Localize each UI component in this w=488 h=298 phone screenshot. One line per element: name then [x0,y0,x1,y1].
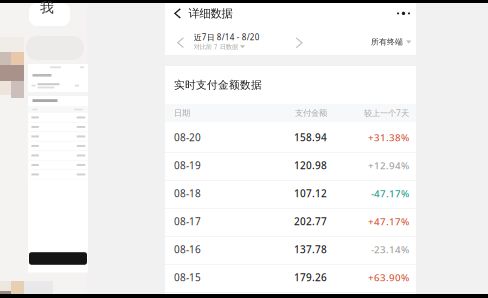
button[interactable]: Back [167,4,189,23]
staticText: 08-17 [174,215,201,228]
staticText: -47.17% [371,187,409,200]
staticText: 08-19 [174,159,201,172]
staticText: 137.78 [294,243,327,256]
button[interactable]: Previous period [171,31,191,55]
staticText: +47.17% [368,215,409,228]
staticText: 所有终端 [371,37,403,47]
staticText: 107.12 [294,187,327,200]
staticText: 详细数据 [189,6,233,21]
button[interactable]: Next period [289,31,309,55]
staticText: 08-20 [174,131,201,144]
staticText: +31.38% [368,131,409,144]
staticText: 08-16 [174,243,201,256]
staticText: 158.94 [294,131,327,144]
staticText: 120.98 [294,159,327,172]
staticText: -23.14% [371,243,409,256]
staticText: 179.26 [294,271,327,284]
staticText: 对比前 7 日数据 [194,42,238,51]
button[interactable]: 近7日 8/14 - 8/20 [194,32,286,51]
button[interactable]: 所有终端 [371,34,413,50]
staticText: 08-15 [174,271,201,284]
staticText: 支付金额 [295,108,327,118]
staticText: 日期 [174,108,190,118]
staticText: 08-18 [174,187,201,200]
staticText: 近7日 8/14 - 8/20 [194,32,260,43]
staticText: 较上一个7天 [364,107,409,119]
staticText: 实时支付金额数据 [174,78,262,92]
staticText: 202.77 [294,215,327,228]
button[interactable]: More options [391,4,415,23]
staticText: +12.94% [368,159,409,172]
staticText: 我 [40,0,54,16]
staticText: +63.90% [368,271,409,284]
